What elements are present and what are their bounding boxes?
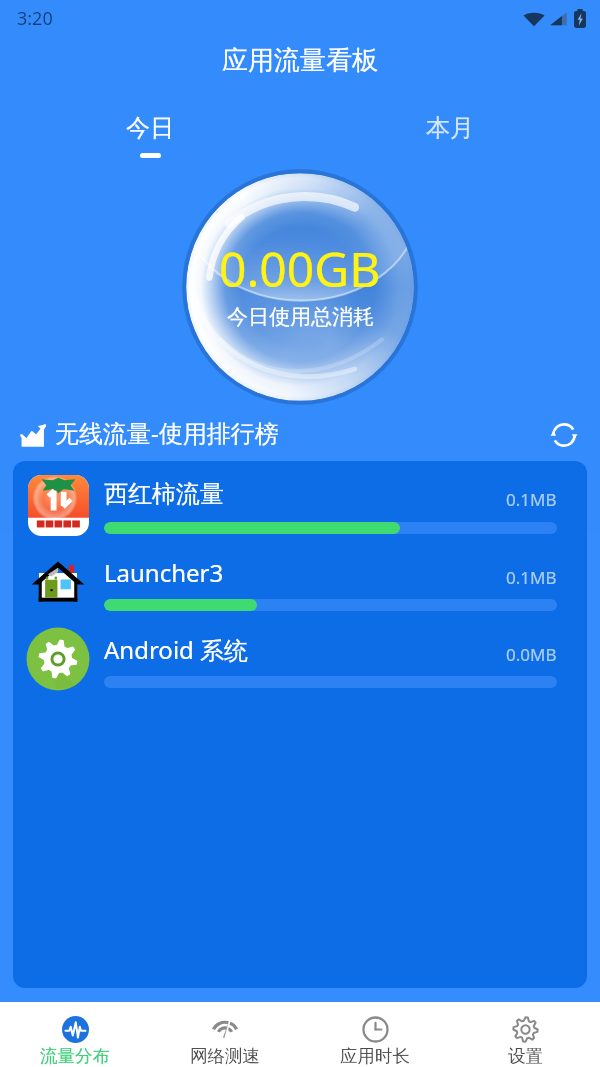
staticText: 设置 bbox=[508, 1045, 543, 1067]
button[interactable]: 应用时长 bbox=[300, 1003, 450, 1067]
staticText: 网络测速 bbox=[190, 1045, 260, 1067]
staticText: 0.00GB bbox=[219, 236, 381, 301]
staticText: 0.1MB bbox=[506, 566, 557, 589]
button[interactable]: 网络测速 bbox=[150, 1003, 300, 1067]
staticText: 应用流量看板 bbox=[222, 44, 378, 77]
staticText: 流量分布 bbox=[40, 1045, 110, 1067]
button[interactable]: 流量分布 bbox=[0, 1003, 150, 1067]
button[interactable]: Refresh bbox=[544, 415, 584, 455]
staticText: 本月 bbox=[426, 113, 474, 143]
button[interactable]: Launcher3 bbox=[13, 538, 587, 615]
staticText: 西红柿流量 bbox=[104, 479, 506, 509]
staticText: 3:20 bbox=[17, 6, 53, 31]
button[interactable]: Android 系统 bbox=[13, 615, 587, 692]
staticText: Launcher3 bbox=[104, 556, 506, 589]
button[interactable]: 今日 bbox=[0, 84, 300, 158]
button[interactable]: 设置 bbox=[450, 1003, 600, 1067]
staticText: 0.1MB bbox=[506, 488, 557, 511]
staticText: 0.0MB bbox=[506, 643, 557, 666]
staticText: 应用时长 bbox=[340, 1045, 410, 1067]
button[interactable]: 西红柿流量 bbox=[13, 461, 587, 538]
staticText: 今日使用总消耗 bbox=[227, 304, 374, 330]
staticText: Android 系统 bbox=[104, 633, 506, 666]
button[interactable]: 本月 bbox=[300, 84, 600, 153]
staticText: 无线流量-使用排行榜 bbox=[55, 416, 279, 449]
staticText: 今日 bbox=[126, 113, 174, 143]
